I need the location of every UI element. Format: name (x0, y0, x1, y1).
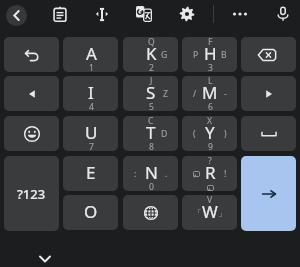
staticText: 9 (208, 141, 213, 151)
staticText: R (205, 161, 216, 184)
button[interactable]: Move cursor (91, 3, 113, 25)
button[interactable]: Back (6, 5, 27, 26)
staticText: F (208, 37, 213, 48)
staticText: . (165, 168, 168, 180)
button[interactable]: W (182, 195, 237, 230)
staticText: H (204, 42, 217, 65)
button[interactable]: Settings (176, 3, 198, 25)
staticText: 6 (208, 101, 213, 111)
staticText: V (207, 195, 213, 206)
staticText: L (208, 76, 213, 87)
staticText: J (150, 76, 153, 87)
button[interactable]: I (63, 76, 118, 111)
button[interactable]: Hide keyboard (35, 249, 55, 267)
staticText: 0 (149, 181, 154, 191)
button[interactable]: Voice input (272, 3, 294, 25)
staticText: I (88, 81, 94, 104)
button[interactable]: Y (182, 116, 237, 151)
staticText: ) (224, 128, 227, 140)
staticText: Z (163, 88, 168, 100)
button[interactable]: R (182, 156, 237, 191)
staticText: P (193, 49, 199, 61)
button[interactable]: Backspace (241, 37, 296, 72)
staticText: 8 (149, 141, 154, 151)
button[interactable]: K (123, 37, 178, 72)
staticText: Q (148, 37, 155, 48)
staticText: E (86, 161, 96, 184)
button[interactable]: O (63, 195, 118, 230)
button[interactable]: Move right (241, 76, 296, 111)
button[interactable]: A (63, 37, 118, 72)
button[interactable]: ?123 (4, 156, 59, 231)
button[interactable]: M (182, 76, 237, 111)
button[interactable]: More options (229, 3, 251, 25)
staticText: 3 (208, 62, 213, 72)
staticText: G (161, 49, 168, 61)
staticText: 「 (193, 208, 202, 219)
staticText: C (148, 116, 154, 127)
staticText: ! (224, 168, 227, 180)
button[interactable]: Move left (4, 76, 59, 111)
button[interactable]: Enter (241, 156, 296, 231)
staticText: 5 (149, 101, 154, 111)
staticText: ?123 (17, 185, 46, 203)
staticText: M (202, 81, 218, 104)
staticText: N (145, 161, 158, 184)
button[interactable]: Emoji (4, 116, 59, 151)
staticText: U (85, 121, 98, 144)
staticText: / (193, 88, 197, 100)
staticText: B (221, 49, 227, 61)
staticText: S (146, 81, 156, 104)
staticText: T (146, 121, 156, 144)
staticText: 7 (89, 141, 94, 151)
button[interactable]: Undo (4, 37, 59, 72)
staticText: ( (193, 128, 196, 140)
staticText: Y (205, 121, 215, 144)
button[interactable]: Space (241, 116, 296, 151)
button[interactable]: Clipboard (49, 3, 71, 25)
staticText: 」 (218, 208, 227, 219)
staticText: ? (208, 156, 212, 167)
staticText: A (86, 42, 97, 65)
button[interactable]: Translate (133, 3, 155, 25)
staticText: 4 (89, 101, 94, 111)
staticText: X (207, 116, 213, 127)
staticText: W (202, 200, 218, 223)
button[interactable]: T (123, 116, 178, 151)
button[interactable]: U (63, 116, 118, 151)
staticText: 2 (149, 62, 154, 72)
button[interactable]: E (63, 156, 118, 191)
staticText: K (146, 42, 157, 65)
staticText: D (161, 128, 168, 140)
button[interactable]: N (123, 156, 178, 191)
staticText: 1 (89, 62, 94, 72)
staticText: O (84, 200, 98, 223)
staticText: - (224, 88, 227, 100)
button[interactable]: S (123, 76, 178, 111)
button[interactable]: Change language (123, 195, 178, 230)
button[interactable]: H (182, 37, 237, 72)
staticText: : (134, 168, 137, 180)
